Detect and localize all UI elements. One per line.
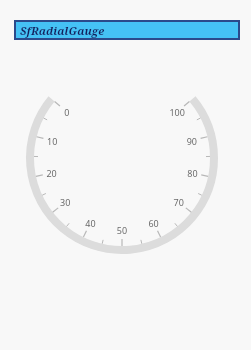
other: Radial gauge 0 to 100: [0, 40, 251, 350]
button[interactable]: SfRadialGauge: [14, 20, 240, 40]
staticText: SfRadialGauge: [20, 23, 105, 38]
